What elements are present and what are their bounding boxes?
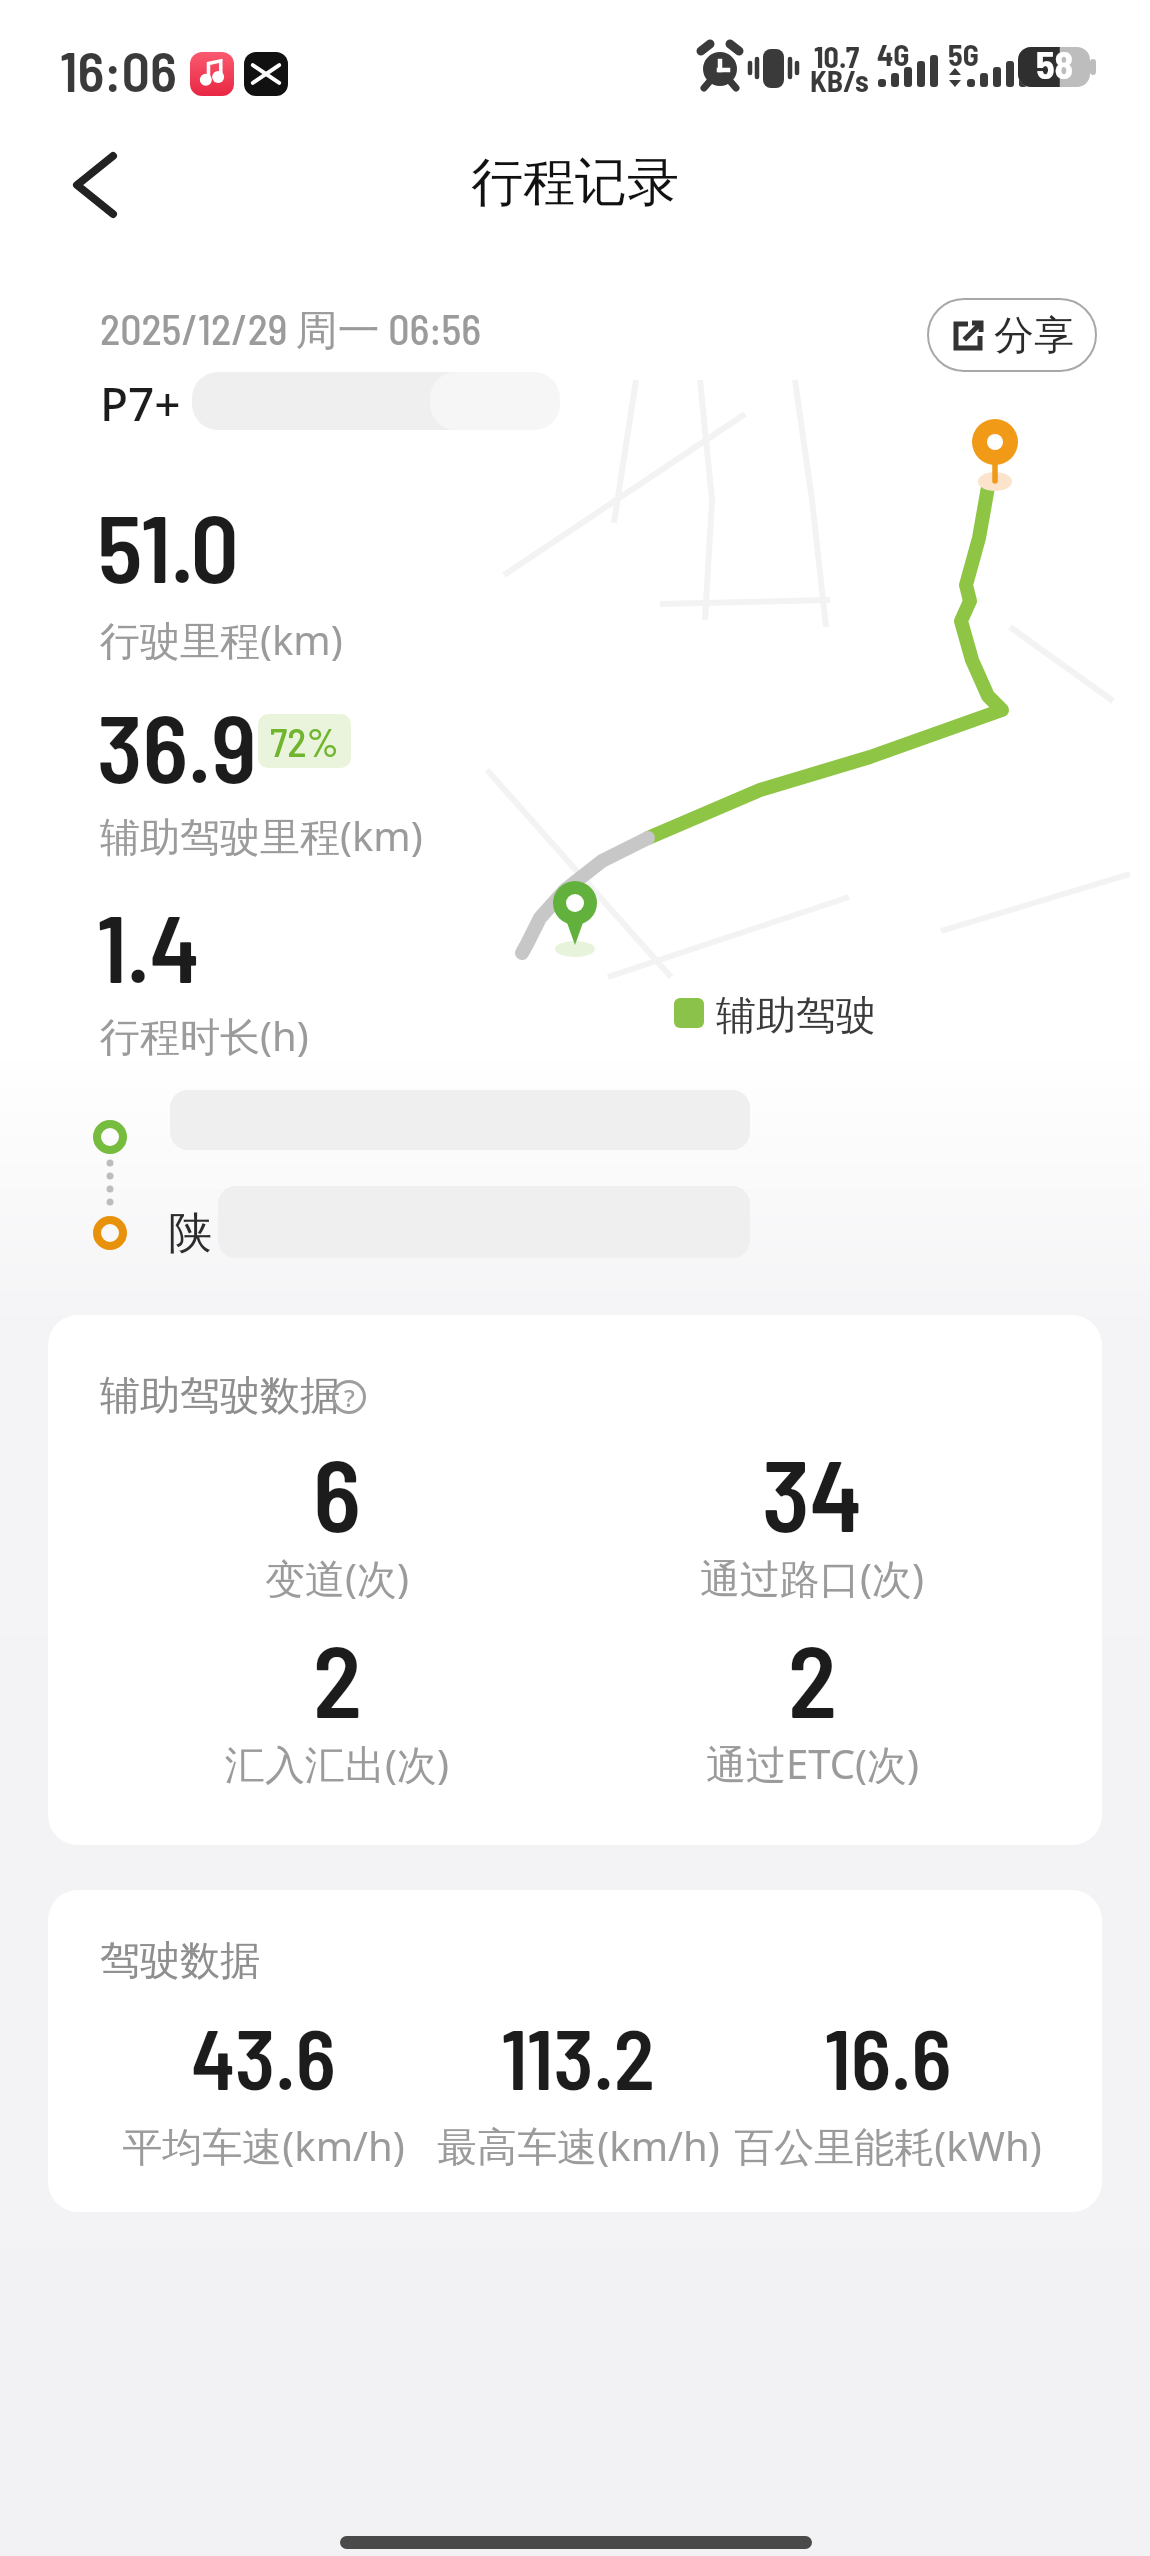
staticText: 2025/12/29 周一 06:56 [100, 303, 482, 357]
staticText: 6 [313, 1432, 361, 1552]
staticText: 行程记录 [471, 150, 679, 216]
staticText: KB/s [810, 62, 869, 98]
staticText: 5G [948, 36, 979, 72]
staticText: 百公里能耗(kWh) [734, 2118, 1042, 2173]
staticText: 43.6 [191, 2006, 336, 2107]
staticText: 16:06 [60, 36, 177, 103]
staticText: 通过路口(次) [700, 1550, 924, 1605]
staticText: 辅助驾驶里程(km) [100, 808, 423, 863]
staticText: 汇入汇出(次) [225, 1736, 449, 1791]
staticText: 2 [788, 1618, 837, 1738]
staticText: 分享 [994, 310, 1074, 360]
staticText: 2 [313, 1618, 362, 1738]
staticText: 行驶里程(km) [100, 612, 343, 667]
staticText: 1.4 [97, 888, 200, 1002]
staticText: 辅助驾驶 [716, 990, 876, 1040]
staticText: 36.9 [97, 688, 257, 802]
button[interactable]: 分享 [927, 298, 1097, 372]
staticText: 34 [762, 1432, 862, 1552]
staticText: ? [344, 1381, 355, 1414]
staticText: 辅助驾驶数据 [100, 1370, 340, 1420]
staticText: 通过ETC(次) [706, 1736, 919, 1791]
staticText: 51.0 [97, 488, 239, 602]
staticText: 最高车速(km/h) [437, 2118, 720, 2173]
staticText: 平均车速(km/h) [122, 2118, 405, 2173]
staticText: 16.6 [824, 2006, 952, 2107]
button[interactable] [55, 140, 145, 230]
staticText: 10.7 [814, 38, 860, 74]
button[interactable]: ? [332, 1380, 366, 1414]
staticText: 陕 [168, 1206, 212, 1261]
staticText: 变道(次) [265, 1550, 409, 1605]
staticText: 113.2 [501, 2006, 655, 2107]
staticText: 58 [1036, 41, 1074, 87]
staticText: 驾驶数据 [100, 1935, 260, 1985]
staticText: 72% [270, 717, 339, 765]
staticText: 行程时长(h) [100, 1008, 309, 1063]
staticText: 4G [877, 36, 910, 72]
staticText: P7+ [100, 372, 181, 435]
